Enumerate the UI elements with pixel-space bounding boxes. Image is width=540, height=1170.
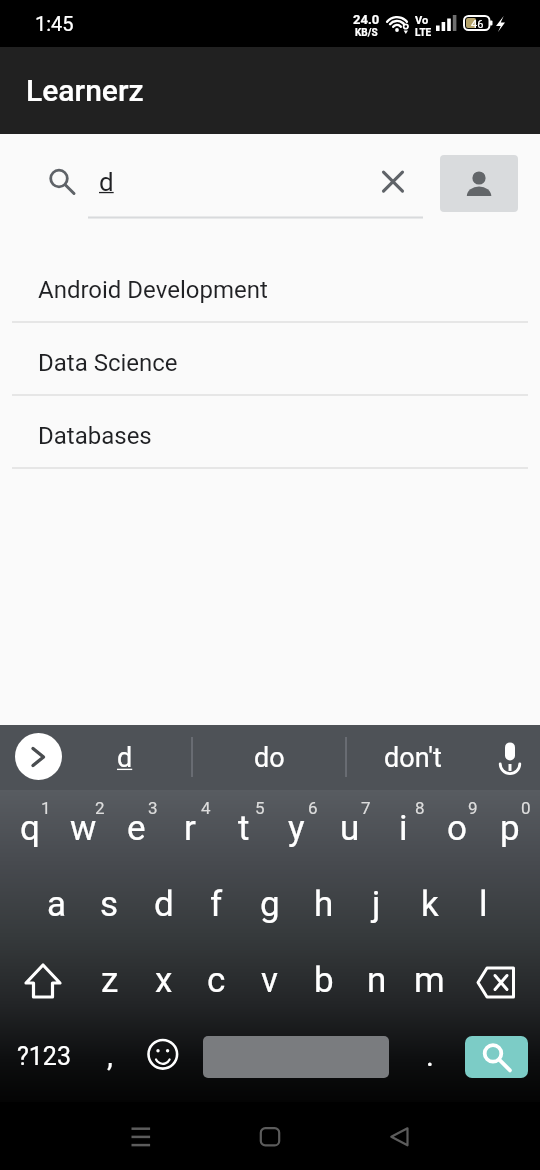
staticText: a (47, 884, 67, 925)
button[interactable]: Android Development (0, 250, 540, 323)
button[interactable]: s (83, 866, 136, 942)
button[interactable]: don't (346, 725, 480, 790)
staticText: w (70, 808, 97, 849)
button[interactable]: g (243, 866, 296, 942)
staticText: 5 (255, 798, 265, 818)
button[interactable]: Search (465, 1036, 528, 1078)
button[interactable]: Clear search (375, 163, 411, 199)
staticText: 6 (308, 798, 318, 818)
button[interactable]: j (350, 866, 403, 942)
staticText: d (99, 167, 114, 197)
staticText: y (288, 808, 305, 849)
button[interactable]: y (270, 790, 323, 866)
staticText: Vo (415, 14, 429, 27)
button[interactable]: Space (203, 1036, 389, 1078)
button[interactable]: Shift (10, 942, 76, 1018)
staticText: do (254, 742, 285, 774)
staticText: l (479, 884, 488, 925)
button[interactable]: Recents (110, 1102, 170, 1170)
staticText: Data Science (38, 349, 178, 377)
button[interactable]: Period (406, 1018, 454, 1094)
staticText: 8 (415, 798, 425, 818)
button[interactable]: m (403, 942, 456, 1018)
button[interactable]: l (457, 866, 510, 942)
button[interactable]: i (377, 790, 430, 866)
staticText: ?123 (17, 1042, 71, 1071)
button[interactable]: Data Science (0, 323, 540, 396)
staticText: v (261, 960, 278, 1001)
button[interactable]: q (3, 790, 56, 866)
button[interactable]: b (297, 942, 350, 1018)
button[interactable]: d (62, 725, 188, 790)
button[interactable]: Account (440, 155, 518, 212)
button[interactable]: t (217, 790, 270, 866)
button[interactable]: r (163, 790, 216, 866)
staticText: j (372, 884, 381, 925)
staticText: b (314, 960, 334, 1001)
staticText: n (367, 960, 387, 1001)
staticText: . (426, 1038, 434, 1073)
staticText: d (117, 742, 133, 774)
staticText: x (155, 960, 173, 1001)
staticText: 46 (471, 18, 484, 31)
button[interactable]: Databases (0, 396, 540, 469)
staticText: don't (384, 742, 442, 774)
staticText: k (421, 884, 439, 925)
staticText: h (314, 884, 334, 925)
button[interactable]: h (297, 866, 350, 942)
staticText: 24.0 (353, 12, 380, 27)
button[interactable]: e (110, 790, 163, 866)
button[interactable]: w (57, 790, 110, 866)
button[interactable]: k (403, 866, 456, 942)
button[interactable]: o (430, 790, 483, 866)
staticText: e (127, 808, 146, 849)
staticText: o (447, 808, 467, 849)
staticText: c (207, 960, 226, 1001)
button[interactable]: p (483, 790, 536, 866)
staticText: z (101, 960, 119, 1001)
staticText: r (184, 808, 196, 849)
staticText: 1 (41, 798, 51, 818)
staticText: KB/S (355, 27, 378, 39)
staticText: , (107, 1038, 113, 1073)
button[interactable]: Emoji (138, 1018, 186, 1094)
staticText: Learnerz (26, 73, 144, 108)
staticText: 7 (361, 798, 371, 818)
staticText: d (154, 884, 174, 925)
staticText: p (500, 808, 520, 849)
staticText: g (260, 884, 280, 925)
button[interactable]: Voice input (480, 725, 540, 790)
staticText: t (238, 808, 250, 849)
button[interactable]: Home (240, 1102, 300, 1170)
button[interactable]: z (83, 942, 136, 1018)
staticText: i (399, 808, 408, 849)
staticText: 0 (521, 798, 531, 818)
button[interactable]: n (350, 942, 403, 1018)
button[interactable]: a (30, 866, 83, 942)
button[interactable]: x (137, 942, 190, 1018)
staticText: s (100, 884, 119, 925)
button[interactable]: f (190, 866, 243, 942)
staticText: u (340, 808, 360, 849)
button[interactable]: v (243, 942, 296, 1018)
button[interactable]: ?123 (0, 1018, 88, 1094)
button[interactable]: d (137, 866, 190, 942)
staticText: 9 (468, 798, 478, 818)
staticText: Databases (38, 422, 152, 450)
button[interactable]: c (190, 942, 243, 1018)
button[interactable]: u (323, 790, 376, 866)
button[interactable]: Search (40, 159, 78, 197)
staticText: LTE (415, 27, 432, 39)
button[interactable]: do (192, 725, 346, 790)
button[interactable]: Backspace (464, 942, 530, 1018)
staticText: 4 (201, 798, 211, 818)
staticText: Android Development (38, 276, 268, 304)
staticText: 3 (148, 798, 158, 818)
button[interactable]: Comma (88, 1018, 132, 1094)
staticText: m (414, 960, 445, 1001)
button[interactable]: Expand suggestions (15, 733, 62, 780)
staticText: 2 (95, 798, 105, 818)
button[interactable]: Back (370, 1102, 430, 1170)
staticText: 1:45 (35, 12, 74, 35)
staticText: q (20, 808, 40, 849)
